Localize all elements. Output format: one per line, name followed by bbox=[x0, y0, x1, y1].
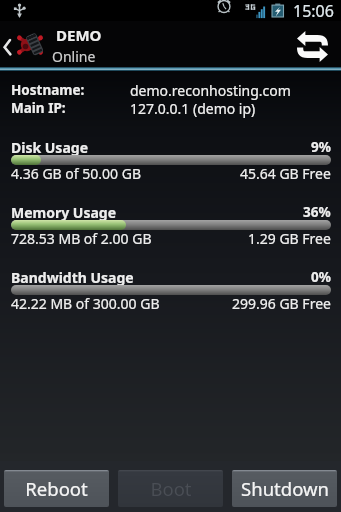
staticText: Hostname: bbox=[11, 81, 130, 99]
button[interactable]: Boot bbox=[118, 470, 223, 507]
staticText: 4.36 GB of 50.00 GB bbox=[11, 164, 141, 183]
staticText: 42.22 MB of 300.00 GB bbox=[11, 294, 160, 313]
staticText: Online bbox=[52, 47, 96, 66]
staticText: 15:06 bbox=[293, 0, 334, 21]
button[interactable]: Reboot bbox=[4, 470, 109, 507]
button[interactable]: Refresh bbox=[289, 21, 341, 67]
staticText: Disk Usage bbox=[11, 138, 88, 157]
staticText: 0% bbox=[311, 268, 331, 286]
staticText: 728.53 MB of 2.00 GB bbox=[11, 229, 152, 248]
staticText: 299.96 GB Free bbox=[232, 294, 331, 313]
staticText: Bandwidth Usage bbox=[11, 268, 134, 287]
staticText: demo.reconhosting.com bbox=[130, 81, 291, 100]
staticText: 36% bbox=[303, 203, 331, 221]
staticText: Reboot bbox=[25, 476, 88, 501]
staticText: 1.29 GB Free bbox=[248, 229, 331, 248]
staticText: Main IP: bbox=[11, 99, 130, 117]
staticText: 127.0.0.1 (demo ip) bbox=[130, 99, 256, 118]
button[interactable]: Shutdown bbox=[232, 470, 337, 507]
staticText: 9% bbox=[311, 138, 331, 156]
staticText: Boot bbox=[150, 476, 192, 501]
staticText: DEMO bbox=[56, 25, 102, 45]
staticText: Shutdown bbox=[241, 476, 329, 501]
staticText: Memory Usage bbox=[11, 203, 117, 222]
button[interactable]: DEMO bbox=[0, 21, 341, 67]
staticText: 45.64 GB Free bbox=[240, 164, 331, 183]
